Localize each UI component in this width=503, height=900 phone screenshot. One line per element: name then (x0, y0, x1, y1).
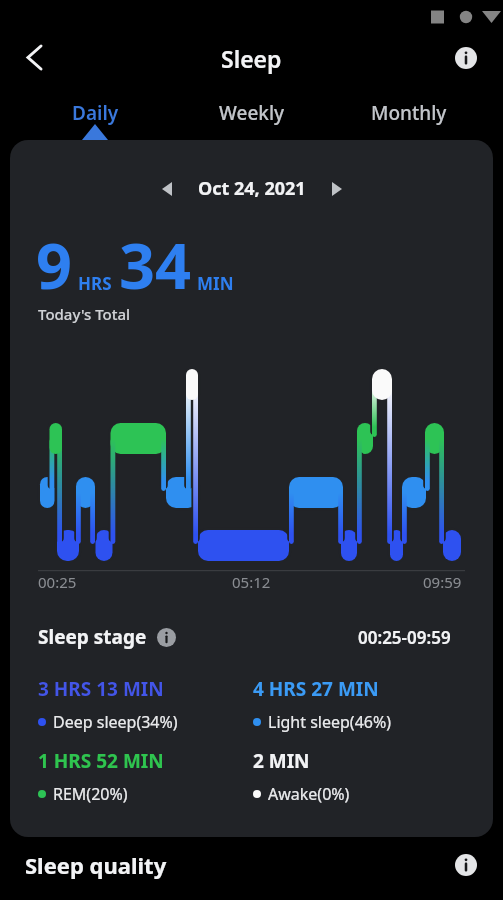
staticText: 2 MIN (253, 748, 310, 774)
button[interactable]: Monthly (369, 96, 449, 130)
button[interactable]: Weekly (212, 96, 292, 130)
staticText: 1 HRS 52 MIN (38, 748, 164, 774)
staticText: Sleep stage (38, 624, 147, 650)
staticText: 9 (36, 222, 73, 308)
staticText: Awake(0%) (268, 783, 350, 805)
button[interactable]: Sleep quality (25, 850, 477, 880)
staticText: 3 HRS 13 MIN (38, 676, 164, 702)
staticText: Sleep quality (25, 850, 167, 880)
staticText: Oct 24, 2021 (198, 176, 306, 201)
staticText: 00:25-09:59 (358, 626, 451, 649)
staticText: Monthly (371, 100, 447, 126)
staticText: 4 HRS 27 MIN (253, 676, 379, 702)
staticText: MIN (197, 272, 234, 295)
staticText: Daily (72, 100, 119, 126)
button[interactable]: Daily (55, 96, 135, 130)
button[interactable] (455, 47, 477, 69)
staticText: HRS (78, 272, 112, 295)
staticText: 09:59 (423, 572, 462, 592)
staticText: 34 (119, 222, 192, 308)
staticText: Deep sleep(34%) (53, 711, 178, 733)
staticText: Weekly (219, 100, 285, 126)
staticText: Light sleep(46%) (268, 711, 392, 733)
button[interactable]: Oct 24, 2021 (10, 176, 493, 201)
staticText: REM(20%) (53, 783, 128, 805)
staticText: Sleep (221, 43, 282, 74)
staticText: 05:12 (232, 572, 271, 592)
button[interactable] (12, 40, 56, 76)
staticText: Today's Total (38, 304, 131, 324)
staticText: 00:25 (38, 572, 77, 592)
